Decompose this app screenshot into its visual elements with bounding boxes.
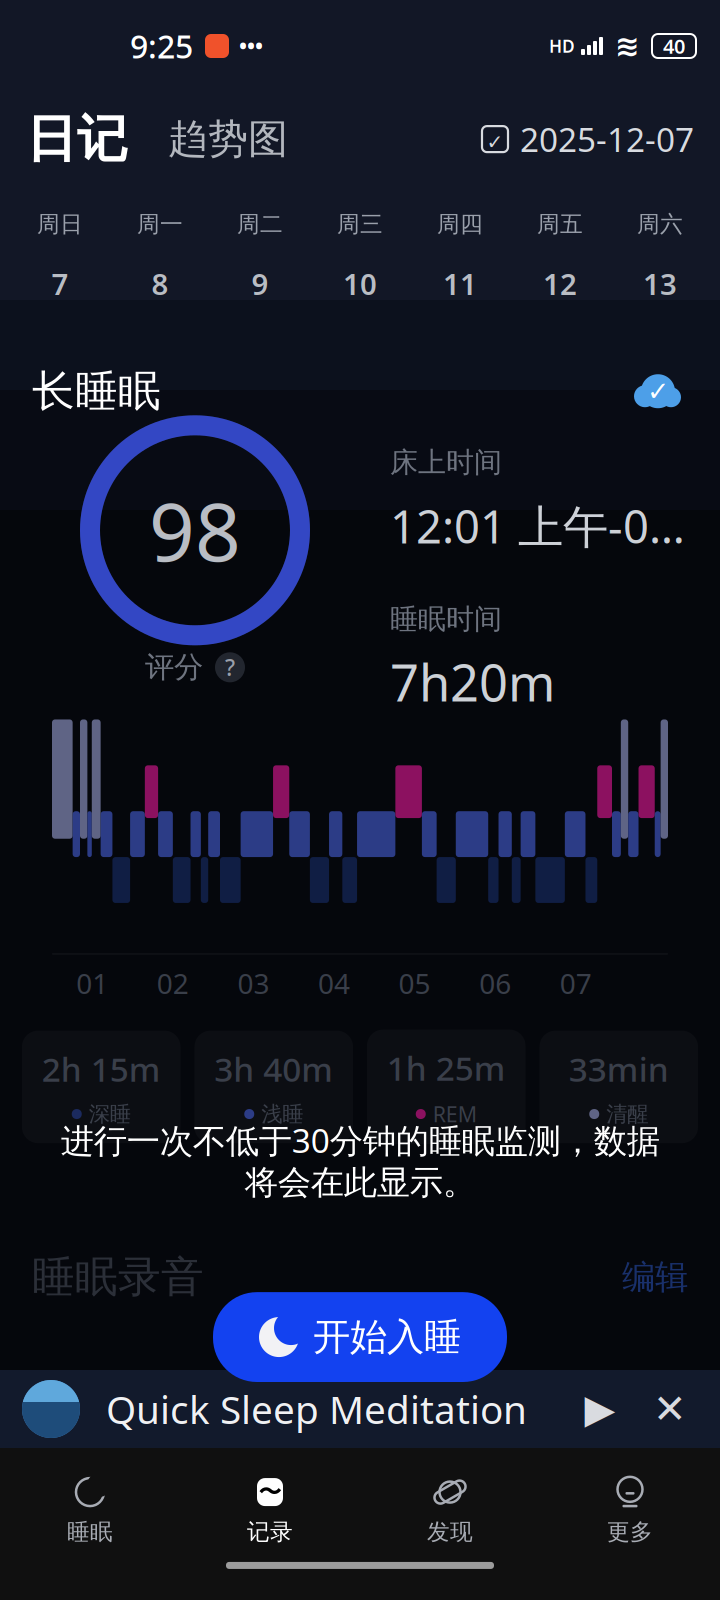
staticText: 10 xyxy=(343,264,377,303)
staticText: 清醒 xyxy=(606,1101,648,1127)
staticText: 睡眠时间 xyxy=(390,602,502,636)
staticText: 周一 xyxy=(137,210,183,238)
button[interactable]: 周六 xyxy=(610,206,710,307)
staticText: 2h 15m xyxy=(42,1047,161,1091)
staticText: ▶ xyxy=(584,1386,615,1432)
staticText: 7h20m xyxy=(390,648,555,716)
staticText: ≋ xyxy=(615,29,640,63)
staticText: 3h 40m xyxy=(214,1047,333,1091)
staticText: 2025-12-07 xyxy=(520,117,694,161)
staticText: 评分 xyxy=(145,649,203,685)
staticText: 周二 xyxy=(237,210,283,238)
button[interactable]: 周五 xyxy=(510,206,610,307)
button[interactable]: 睡眠 xyxy=(0,1465,180,1546)
button[interactable]: 趋势图 xyxy=(168,115,288,164)
button[interactable]: 日记 xyxy=(26,108,128,170)
staticText: 07 xyxy=(560,964,592,1002)
button[interactable]: 评分说明 xyxy=(215,652,245,682)
staticText: 浅睡 xyxy=(261,1101,303,1127)
staticText: 11 xyxy=(443,264,477,303)
button[interactable]: 关闭 xyxy=(642,1381,698,1437)
staticText: 7 xyxy=(51,264,68,303)
staticText: 9:25 xyxy=(130,25,193,67)
staticText: 06 xyxy=(479,964,511,1002)
button[interactable]: 发现 xyxy=(360,1465,540,1546)
staticText: 开始入睡 xyxy=(313,1314,461,1360)
staticText: 03 xyxy=(237,964,269,1002)
staticText: 日记 xyxy=(26,108,128,170)
staticText: ✓ xyxy=(486,131,503,153)
staticText: Quick Sleep Meditation xyxy=(106,1383,527,1435)
button[interactable]: 周日 xyxy=(10,206,110,307)
staticText: 05 xyxy=(399,964,431,1002)
staticText: 周日 xyxy=(37,210,83,238)
staticText: 周六 xyxy=(637,210,683,238)
staticText: 编辑 xyxy=(622,1257,688,1297)
button[interactable]: 周一 xyxy=(110,206,210,307)
staticText: 睡眠录音 xyxy=(32,1251,204,1303)
staticText: 33min xyxy=(569,1047,669,1091)
staticText: 01 xyxy=(76,964,108,1002)
button[interactable]: ✓ xyxy=(482,117,694,161)
staticText: 深睡 xyxy=(89,1101,131,1127)
staticText: 发现 xyxy=(427,1518,473,1546)
staticText: 04 xyxy=(318,964,350,1002)
staticText: 记录 xyxy=(247,1518,293,1546)
staticText: 98 xyxy=(149,477,241,583)
staticText: 〜 xyxy=(258,1478,281,1506)
staticText: 9 xyxy=(251,264,268,303)
staticText: ••• xyxy=(239,32,263,60)
staticText: 睡眠 xyxy=(67,1518,113,1546)
button[interactable]: 〜 xyxy=(180,1465,360,1546)
button[interactable]: 周二 xyxy=(210,206,310,307)
staticText: REM xyxy=(433,1100,477,1128)
staticText: ✕ xyxy=(653,1386,687,1432)
staticText: 1h 25m xyxy=(387,1046,506,1090)
button[interactable]: 周三 xyxy=(310,206,410,307)
staticText: ✓ xyxy=(647,376,669,406)
staticText: 床上时间 xyxy=(390,445,502,480)
staticText: 周四 xyxy=(437,210,483,238)
button[interactable]: 更多 xyxy=(540,1465,720,1546)
staticText: 40 xyxy=(663,33,685,59)
staticText: 长睡眠 xyxy=(32,365,161,417)
staticText: HD xyxy=(549,34,575,57)
staticText: 周三 xyxy=(337,210,383,238)
staticText: 进行一次不低于30分钟的睡眠监测，数据将会在此显示。 xyxy=(60,1118,659,1203)
staticText: 8 xyxy=(151,264,168,303)
button[interactable]: 已同步 xyxy=(628,368,688,414)
button[interactable]: 周四 xyxy=(410,206,510,307)
staticText: 周五 xyxy=(537,210,583,238)
staticText: 12 xyxy=(543,264,577,303)
staticText: 12:01 上午-0… xyxy=(390,496,685,556)
button[interactable]: 编辑 xyxy=(622,1257,688,1297)
staticText: ? xyxy=(225,652,235,682)
button[interactable]: 播放 xyxy=(572,1381,628,1437)
staticText: 趋势图 xyxy=(168,115,288,164)
staticText: 02 xyxy=(157,964,189,1002)
staticText: 13 xyxy=(643,264,677,303)
button[interactable]: 开始入睡 xyxy=(213,1292,507,1382)
staticText: 更多 xyxy=(607,1518,653,1546)
